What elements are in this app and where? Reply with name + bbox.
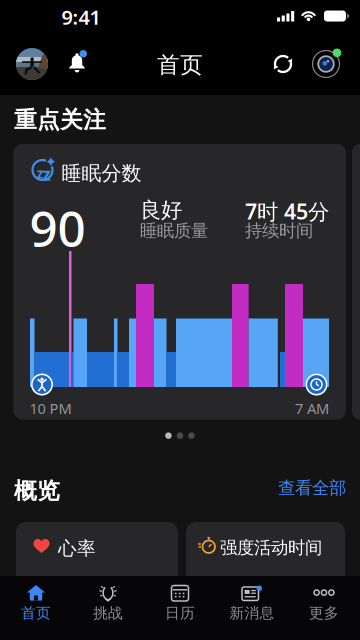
staticText: 90 — [29, 195, 85, 260]
button[interactable]: 首页 — [0, 578, 72, 626]
staticText: 持续时间 — [245, 220, 313, 241]
staticText: 重点关注 — [14, 106, 106, 134]
staticText: 睡眠质量 — [140, 220, 208, 241]
staticText: z — [42, 162, 51, 185]
staticText: z — [37, 164, 44, 182]
button[interactable]: 更多 — [288, 578, 360, 626]
staticText: 7时 45分 — [245, 197, 329, 225]
staticText: 新消息 — [229, 604, 274, 622]
button[interactable]: 心率 — [16, 522, 178, 602]
staticText: 更多 — [309, 604, 339, 622]
button[interactable]: 新消息 — [216, 578, 288, 626]
staticText: 心率 — [58, 537, 96, 560]
button[interactable]: 通知 — [66, 50, 88, 74]
staticText: 7 AM — [295, 398, 329, 418]
button[interactable]: 强度活动时间 — [186, 522, 345, 602]
staticText: 强度活动时间 — [220, 537, 322, 558]
staticText: 9:41 — [61, 4, 100, 30]
button[interactable]: 日历 — [144, 578, 216, 626]
button[interactable]: 设备 — [312, 50, 339, 77]
button[interactable]: 同步 — [272, 53, 294, 75]
button[interactable]: 挑战 — [72, 578, 144, 626]
button[interactable]: z — [13, 144, 346, 419]
staticText: 日历 — [165, 604, 195, 622]
staticText: 查看全部 — [278, 477, 346, 499]
staticText: 睡眠分数 — [61, 161, 141, 186]
staticText: 首页 — [157, 51, 203, 79]
button[interactable]: 个人资料 — [16, 48, 48, 80]
staticText: 10 PM — [29, 398, 71, 418]
button[interactable]: 查看全部 — [274, 479, 346, 497]
staticText: 概览 — [14, 477, 60, 505]
staticText: 首页 — [21, 604, 51, 622]
staticText: 良好 — [140, 197, 182, 223]
staticText: 挑战 — [93, 604, 123, 622]
